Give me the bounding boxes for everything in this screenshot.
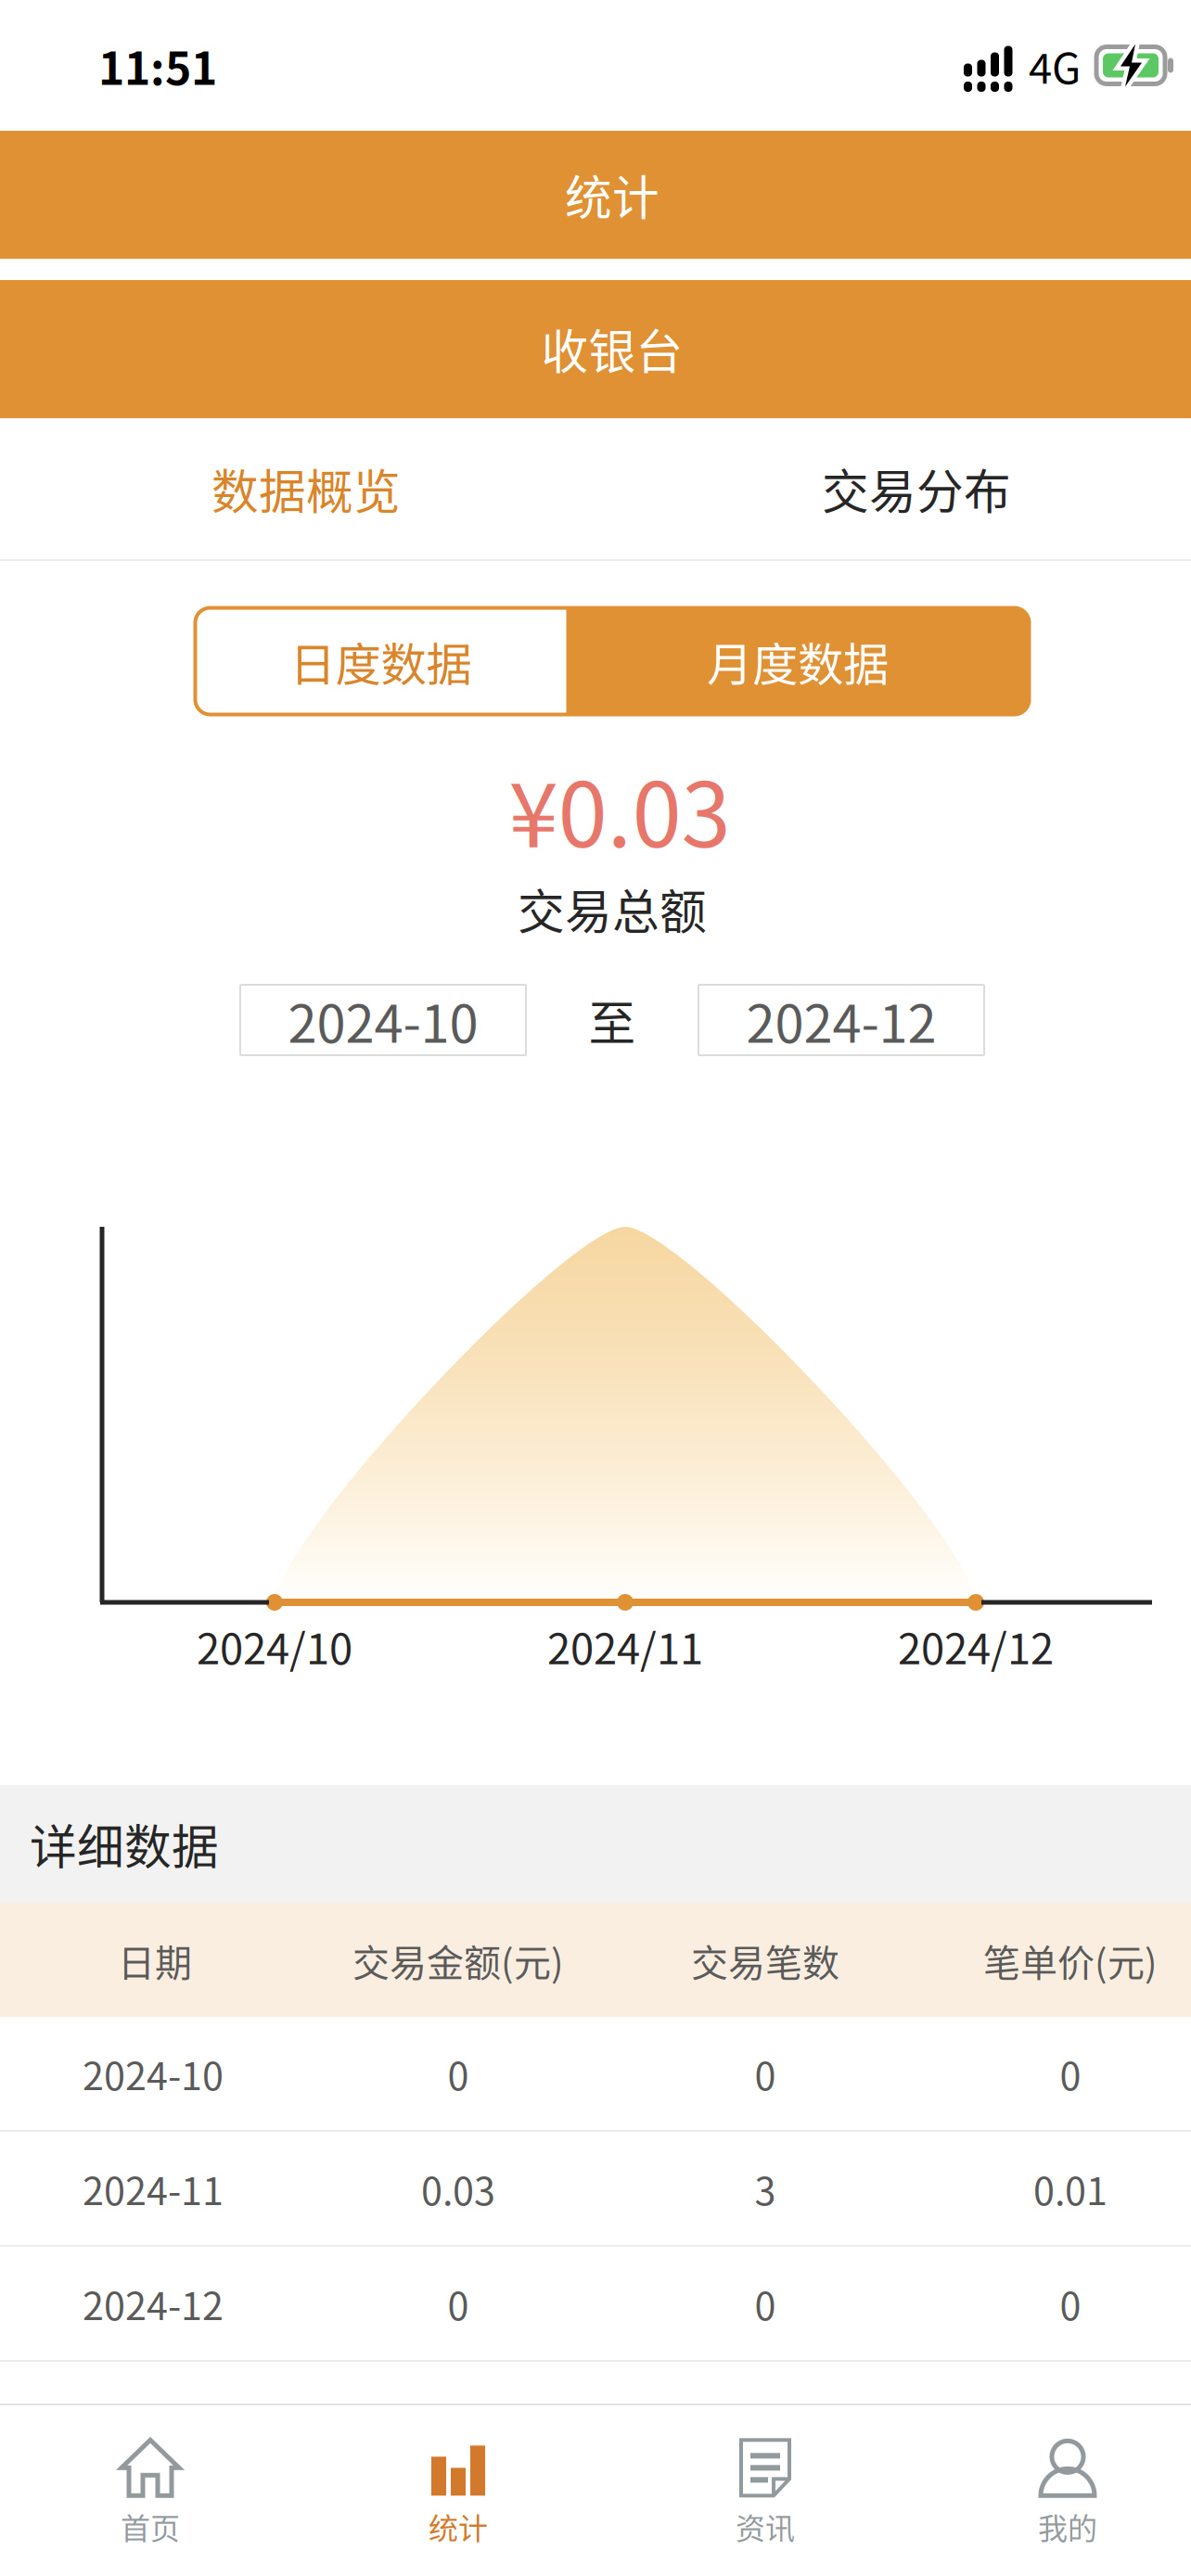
staticText: 统计 — [565, 161, 660, 229]
staticText: 2024-12 — [83, 2276, 224, 2331]
staticText: 资讯 — [736, 2505, 795, 2548]
staticText: 0 — [755, 2046, 776, 2101]
staticText: 4G — [1029, 35, 1081, 96]
staticText: 至 — [589, 986, 636, 1054]
staticText: 数据概览 — [211, 455, 401, 523]
staticText: 月度数据 — [707, 628, 889, 694]
staticText: 11:51 — [98, 33, 217, 98]
button[interactable]: 资讯 — [617, 2407, 914, 2576]
staticText: 首页 — [121, 2505, 180, 2548]
staticText: 详细数据 — [30, 1810, 219, 1878]
staticText: 2024/10 — [197, 1616, 352, 1676]
staticText: ¥0.03 — [509, 744, 730, 873]
staticText: 笔单价(元) — [983, 1933, 1158, 1987]
staticText: 交易总额 — [518, 875, 707, 943]
button[interactable]: 日度数据 — [195, 608, 1029, 714]
button[interactable]: 我的 — [919, 2407, 1191, 2576]
staticText: 交易分布 — [822, 455, 1011, 523]
staticText: 日度数据 — [290, 628, 472, 694]
staticText: 交易笔数 — [691, 1933, 839, 1987]
staticText: 2024/11 — [547, 1616, 703, 1676]
staticText: 2024-12 — [746, 982, 936, 1058]
button[interactable]: 收银台 — [0, 280, 1191, 418]
staticText: 统计 — [429, 2505, 488, 2548]
staticText: 0.03 — [421, 2161, 495, 2216]
staticText: 0 — [755, 2276, 776, 2331]
staticText: 2024-11 — [83, 2161, 224, 2216]
button[interactable]: 统计 — [0, 131, 1191, 259]
staticText: 3 — [755, 2161, 776, 2216]
button[interactable]: 统计 — [310, 2407, 607, 2576]
button[interactable]: 首页 — [2, 2407, 299, 2576]
staticText: 交易金额(元) — [352, 1933, 564, 1987]
staticText: 收银台 — [541, 315, 683, 383]
staticText: 我的 — [1038, 2505, 1097, 2548]
staticText: 0.01 — [1033, 2161, 1108, 2216]
staticText: 0 — [448, 2046, 469, 2101]
button[interactable]: 2024-10 — [240, 985, 526, 1055]
staticText: 日期 — [118, 1933, 192, 1987]
staticText: 2024-10 — [288, 982, 478, 1058]
staticText: 0 — [1060, 2276, 1081, 2331]
button[interactable]: 2024-12 — [698, 985, 984, 1055]
staticText: 2024-10 — [83, 2046, 224, 2101]
staticText: 0 — [448, 2276, 469, 2331]
button[interactable]: 交易分布 — [619, 418, 1191, 559]
staticText: 0 — [1060, 2046, 1081, 2101]
staticText: 2024/12 — [898, 1616, 1054, 1676]
button[interactable]: 数据概览 — [8, 418, 604, 559]
